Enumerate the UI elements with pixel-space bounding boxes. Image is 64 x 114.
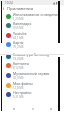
button[interactable]: Использование и сведения (0, 12, 64, 21)
button[interactable]: Back (46, 104, 55, 113)
staticText: Приложения (7, 6, 34, 12)
staticText: 12,8 МБ (13, 86, 24, 90)
button[interactable]: Мои файлы (0, 81, 64, 90)
button[interactable]: Настройки (0, 90, 64, 99)
staticText: Клавиатура Samsung (13, 52, 49, 57)
staticText: Контакты (13, 61, 30, 66)
button[interactable]: Музыкальный сервис (0, 71, 64, 80)
staticText: Карты (13, 40, 24, 45)
button[interactable]: Home (28, 104, 37, 113)
staticText: ▲ ▮ ▮ (53, 1, 61, 5)
staticText: 5,31 МБ (13, 95, 24, 99)
staticText: 75,2 МБ (13, 45, 24, 49)
staticText: 8,12 МБ (13, 66, 24, 70)
button[interactable]: Контакты (0, 61, 64, 70)
staticText: Музыкальный сервис (13, 71, 50, 76)
button[interactable]: Карты (0, 40, 64, 49)
staticText: Календарь (13, 21, 32, 26)
staticText: 1,23 МБ (13, 17, 24, 21)
staticText: Мои файлы (13, 81, 33, 86)
staticText: Настройки (13, 90, 32, 95)
button[interactable]: Back (0, 5, 7, 12)
staticText: 24,1 МБ (13, 36, 24, 40)
staticText: 18,4 МБ (13, 57, 24, 61)
staticText: Youtube (13, 31, 27, 36)
staticText: 10:24 (5, 1, 13, 5)
staticText: 9,55 МБ (13, 26, 24, 30)
staticText: 32,0 МБ (13, 76, 24, 80)
button[interactable]: Recents (9, 104, 18, 113)
button[interactable]: Календарь (0, 21, 64, 30)
staticText: Использование и сведения (13, 12, 60, 17)
button[interactable]: Клавиатура Samsung (0, 52, 64, 61)
button[interactable]: Youtube (0, 31, 64, 40)
